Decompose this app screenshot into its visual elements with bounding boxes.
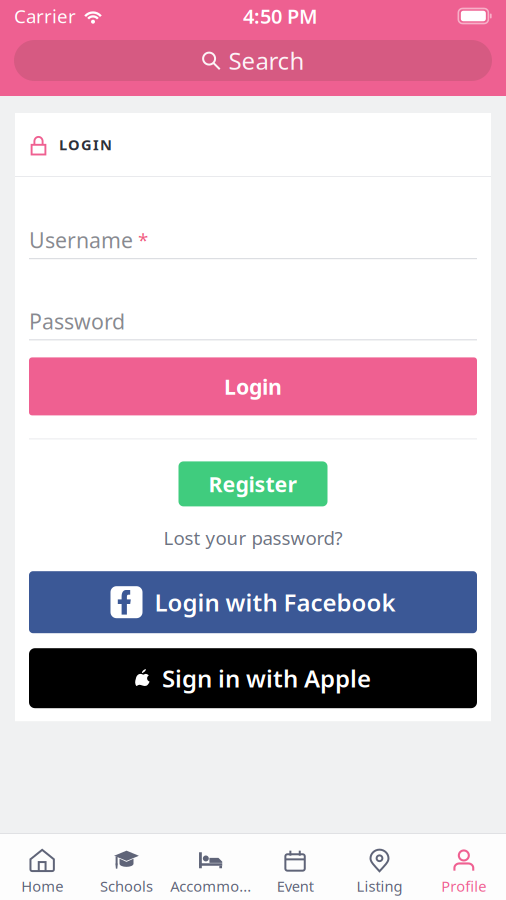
staticText: Home (21, 876, 63, 896)
staticText: Search (228, 45, 304, 76)
staticText: Sign in with Apple (162, 662, 371, 694)
button[interactable]: Lost your password? (163, 520, 342, 555)
button[interactable]: Accommo... (169, 846, 253, 896)
button[interactable]: Search (0, 40, 506, 81)
staticText: * (138, 228, 148, 252)
staticText: Listing (356, 876, 402, 896)
staticText: Accommo... (170, 876, 251, 896)
button[interactable]: Schools (84, 846, 169, 896)
button[interactable]: Login with Facebook (29, 571, 477, 633)
button[interactable]: Sign in with Apple (29, 648, 477, 708)
button[interactable]: Home (0, 846, 84, 896)
button[interactable]: Listing (337, 846, 422, 896)
button[interactable]: Register (178, 461, 327, 506)
staticText: Login (224, 372, 282, 400)
button[interactable]: Event (253, 846, 337, 896)
staticText: Login with Facebook (154, 586, 395, 618)
button[interactable]: Profile (422, 846, 506, 896)
staticText: Register (208, 470, 297, 498)
staticText: Profile (441, 876, 486, 896)
staticText: Username (29, 226, 133, 254)
staticText: Schools (100, 876, 153, 896)
staticText: L O G I N (59, 135, 112, 154)
staticText: Carrier (14, 4, 76, 28)
staticText: Event (277, 876, 314, 896)
staticText: 4:50 PM (243, 3, 318, 29)
staticText: Lost your password? (163, 525, 342, 550)
button[interactable]: Login (29, 357, 477, 415)
staticText: Password (29, 307, 125, 335)
